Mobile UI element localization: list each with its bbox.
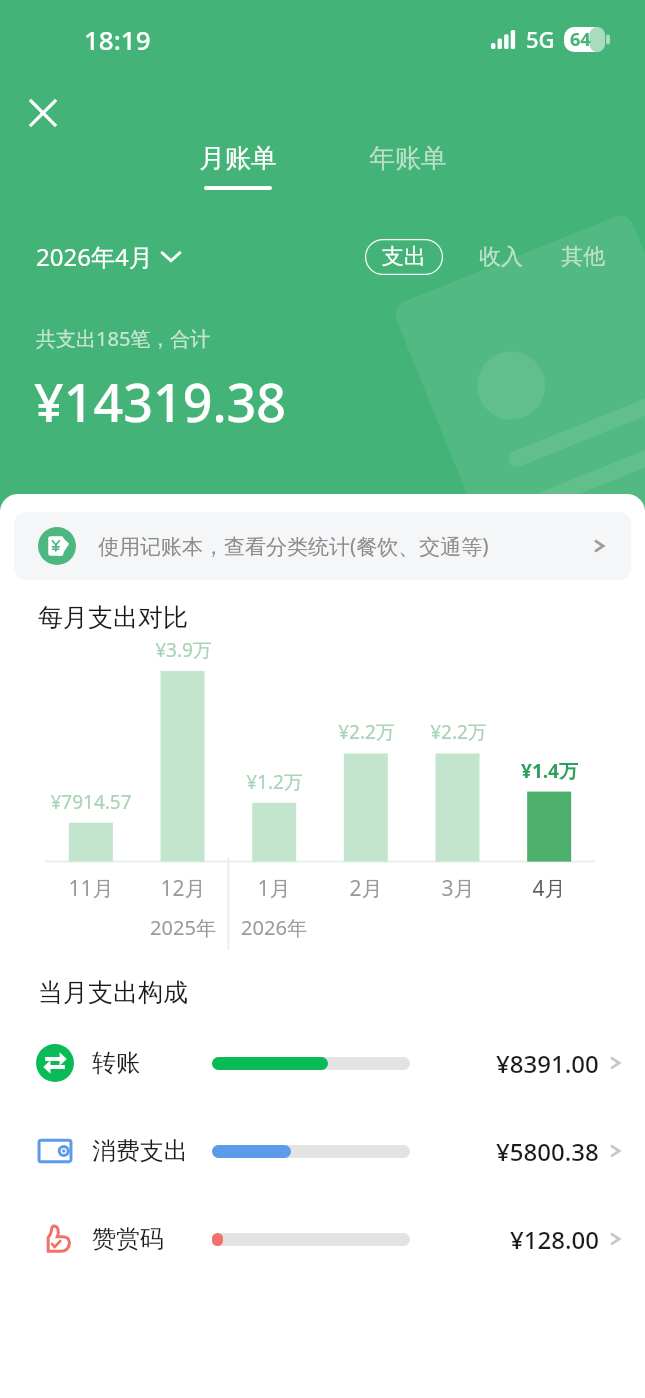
staticText: 年账单 bbox=[369, 142, 447, 175]
staticText: 使用记账本，查看分类统计(餐饮、交通等) bbox=[98, 532, 489, 561]
staticText: 1月 bbox=[257, 874, 291, 903]
staticText: ¥2.2万 bbox=[338, 719, 395, 745]
staticText: 18:19 bbox=[84, 22, 151, 57]
staticText: ¥2.2万 bbox=[430, 719, 487, 745]
button[interactable]: 其他 bbox=[551, 235, 615, 279]
staticText: 收入 bbox=[479, 243, 523, 271]
staticText: ¥5800.38 bbox=[496, 1135, 599, 1168]
button[interactable]: 使用记账本，查看分类统计(餐饮、交通等) bbox=[14, 512, 631, 580]
staticText: 2026年4月 bbox=[36, 240, 153, 273]
staticText: 5G bbox=[526, 24, 555, 54]
staticText: 2026年 bbox=[241, 914, 307, 941]
staticText: ¥1.4万 bbox=[521, 758, 578, 784]
button[interactable]: 月账单 bbox=[189, 138, 287, 194]
staticText: 当月支出构成 bbox=[38, 977, 188, 1008]
staticText: 支出 bbox=[382, 243, 426, 271]
staticText: 4月 bbox=[532, 874, 566, 903]
staticText: 消费支出 bbox=[92, 1136, 212, 1166]
staticText: 3月 bbox=[441, 874, 475, 903]
staticText: ¥1.2万 bbox=[246, 769, 303, 795]
staticText: 2025年 bbox=[150, 914, 216, 941]
staticText: ¥8391.00 bbox=[496, 1047, 599, 1080]
staticText: 转账 bbox=[92, 1048, 212, 1078]
staticText: 12月 bbox=[160, 874, 206, 903]
staticText: 赞赏码 bbox=[92, 1224, 212, 1254]
button[interactable]: 消费支出 bbox=[0, 1122, 645, 1180]
button[interactable]: 2026年4月 bbox=[36, 234, 180, 279]
staticText: 共支出185笔，合计 bbox=[36, 325, 211, 352]
button[interactable]: 转账 bbox=[0, 1034, 645, 1092]
staticText: 11月 bbox=[68, 874, 114, 903]
button[interactable]: 支出 bbox=[365, 239, 443, 275]
staticText: 每月支出对比 bbox=[38, 602, 188, 633]
staticText: 其他 bbox=[561, 243, 605, 271]
button[interactable]: Close bbox=[18, 88, 68, 138]
button[interactable]: 收入 bbox=[469, 235, 533, 279]
staticText: 月账单 bbox=[199, 142, 277, 175]
staticText: 64 bbox=[570, 27, 591, 52]
button[interactable]: 年账单 bbox=[359, 138, 457, 194]
button[interactable]: 赞赏码 bbox=[0, 1210, 645, 1268]
staticText: ¥7914.57 bbox=[50, 789, 132, 815]
staticText: ¥128.00 bbox=[510, 1223, 599, 1256]
staticText: ¥3.9万 bbox=[155, 637, 212, 663]
staticText: 2月 bbox=[349, 874, 383, 903]
staticText: ¥14319.38 bbox=[34, 366, 287, 437]
